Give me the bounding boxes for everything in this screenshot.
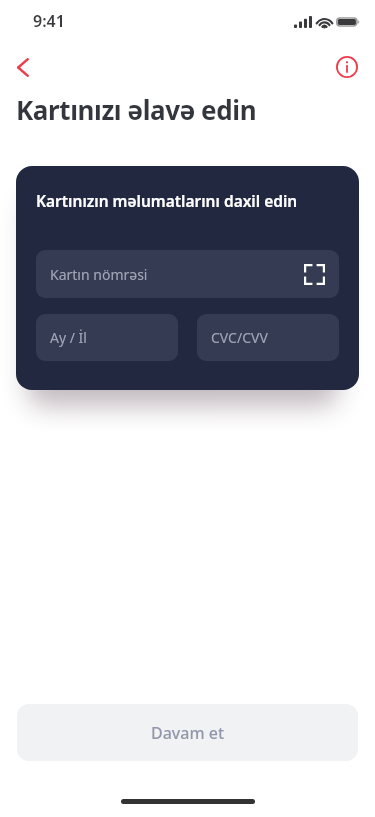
staticText: 9:41 [33, 10, 65, 32]
button[interactable]: Kartın nömrəsi [36, 250, 339, 298]
button[interactable]: Davam et [17, 704, 358, 761]
staticText: Kartınızı əlavə edin [16, 92, 257, 127]
staticText: Kartınızın məlumatlarını daxil edin [36, 190, 298, 211]
button[interactable]: Ay / İl [36, 314, 178, 361]
staticText: CVC/CVV [211, 328, 268, 347]
staticText: Kartın nömrəsi [50, 265, 148, 284]
button[interactable]: CVC/CVV [197, 314, 339, 361]
button[interactable]: Scan card [301, 261, 327, 287]
staticText: Ay / İl [50, 328, 87, 347]
staticText: Davam et [151, 722, 225, 744]
button[interactable]: Back [6, 50, 40, 84]
button[interactable]: Information [330, 50, 364, 84]
